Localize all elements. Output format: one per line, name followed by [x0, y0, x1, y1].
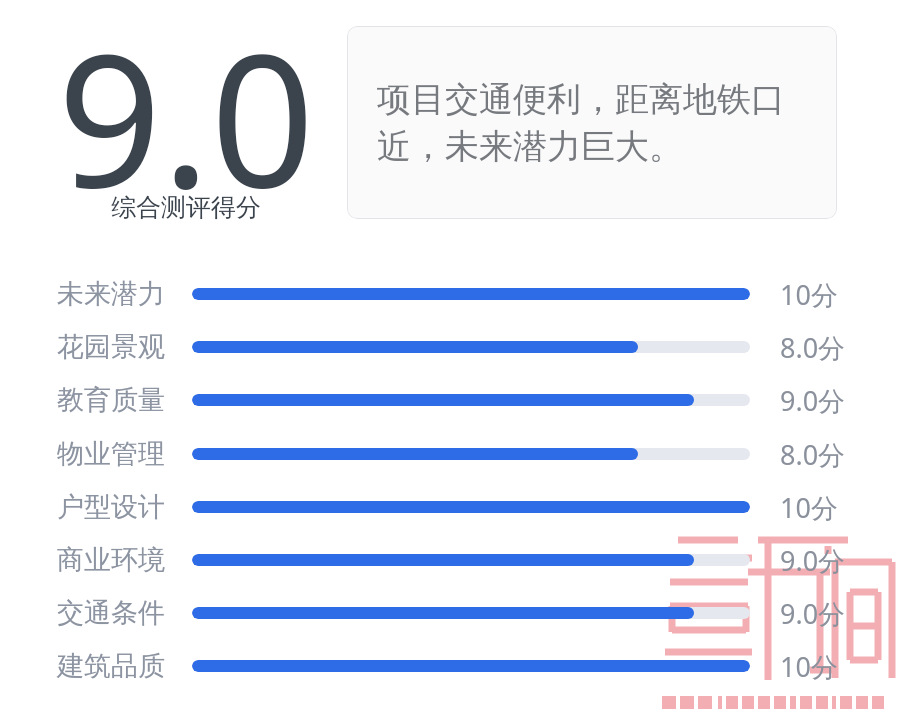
staticText: 教育质量	[57, 383, 165, 417]
staticText: 未来潜力	[57, 277, 165, 311]
staticText: 项目交通便利，距离地铁口 近，未来潜力巨大。	[377, 78, 785, 168]
staticText: 10分	[780, 489, 838, 526]
staticText: 9.0分	[780, 382, 846, 419]
staticText: 9.0	[36, 0, 336, 202]
staticText: 商业环境	[57, 543, 165, 577]
button[interactable]: 未来潜力	[40, 274, 858, 314]
staticText: 建筑品质	[57, 649, 165, 683]
staticText: 物业管理	[57, 437, 165, 471]
button[interactable]: 花园景观	[40, 327, 858, 367]
staticText: 10分	[780, 276, 838, 313]
other: Watermark 1wanjian.com	[660, 520, 898, 720]
staticText: 9.0分	[780, 542, 846, 579]
button[interactable]: 教育质量	[40, 380, 858, 420]
staticText: 8.0分	[780, 329, 846, 366]
staticText: 综合测评得分	[36, 192, 336, 223]
button[interactable]: 商业环境	[40, 540, 858, 580]
staticText: 户型设计	[57, 490, 165, 524]
button[interactable]: 建筑品质	[40, 646, 858, 686]
staticText: 10分	[780, 648, 838, 685]
button[interactable]: 9.0	[36, 18, 336, 228]
staticText: 8.0分	[780, 436, 846, 473]
staticText: 9.0分	[780, 595, 846, 632]
staticText: 交通条件	[57, 596, 165, 630]
staticText: 花园景观	[57, 330, 165, 364]
button[interactable]: 项目交通便利，距离地铁口 近，未来潜力巨大。	[347, 26, 837, 219]
button[interactable]: 交通条件	[40, 593, 858, 633]
button[interactable]: 户型设计	[40, 487, 858, 527]
button[interactable]: 物业管理	[40, 434, 858, 474]
